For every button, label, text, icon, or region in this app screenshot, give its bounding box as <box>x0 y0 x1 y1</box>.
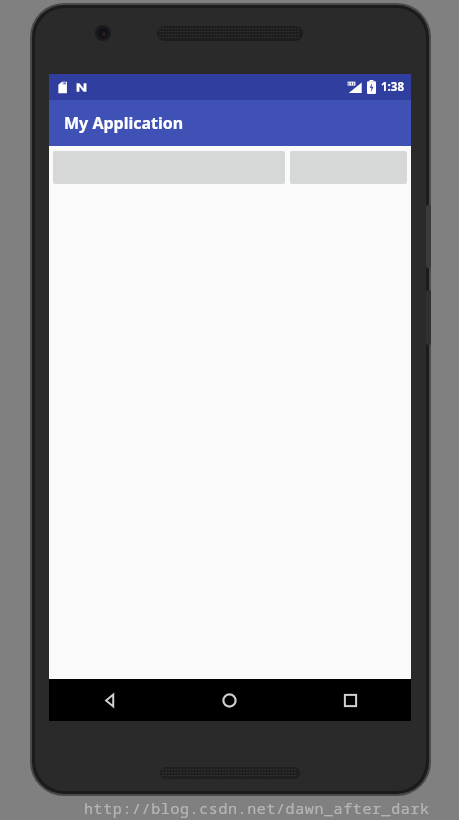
button[interactable]: Recent apps <box>290 679 411 721</box>
staticText: 1:38 <box>381 79 404 95</box>
button[interactable]: Home <box>169 679 290 721</box>
button[interactable]: Back <box>49 679 169 721</box>
staticText: My Application <box>64 112 184 134</box>
staticText: http://blog.csdn.net/dawn_after_dark <box>84 798 430 818</box>
